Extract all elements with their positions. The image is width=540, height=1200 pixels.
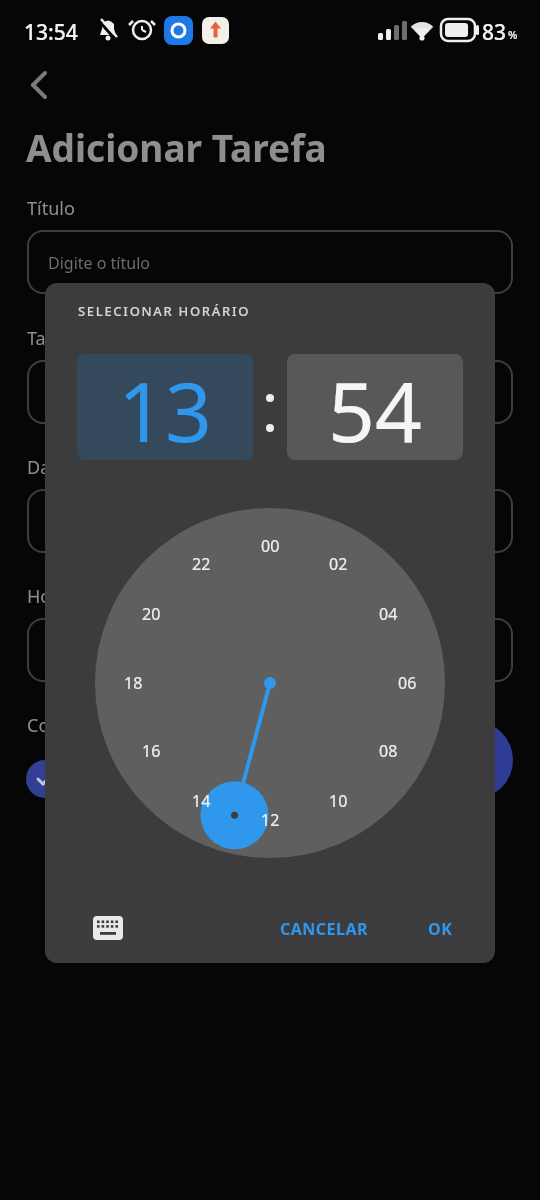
button[interactable]: 00	[248, 534, 292, 558]
staticText: 00	[261, 535, 280, 557]
staticText: 54	[328, 354, 422, 460]
staticText: 83	[482, 18, 507, 44]
staticText: Cor	[27, 713, 57, 735]
button[interactable]: 20	[129, 602, 173, 626]
staticText: 13	[118, 354, 212, 460]
button[interactable]	[27, 230, 513, 294]
button[interactable]: 54	[287, 354, 463, 460]
staticText: 14	[192, 790, 211, 812]
staticText: 06	[398, 672, 417, 694]
button[interactable]	[27, 360, 513, 424]
button[interactable]: 16	[129, 739, 173, 763]
button[interactable]: 13	[77, 354, 253, 460]
staticText: Digite o título	[48, 252, 150, 274]
staticText: SELECIONAR HORÁRIO	[78, 302, 251, 320]
staticText: Título	[27, 196, 75, 218]
staticText: 08	[379, 740, 398, 762]
staticText: 20	[142, 603, 161, 625]
button[interactable]: 18	[111, 671, 155, 695]
staticText: CANCELAR	[280, 918, 369, 940]
staticText: Hora	[27, 584, 69, 606]
staticText: 04	[379, 603, 398, 625]
staticText: 10	[329, 790, 348, 812]
button[interactable]: OK	[415, 913, 465, 945]
button[interactable]: 02	[316, 552, 360, 576]
staticText: OK	[428, 918, 453, 940]
staticText: 16	[142, 740, 161, 762]
button[interactable]	[27, 618, 513, 682]
button[interactable]: CANCELAR	[257, 913, 392, 945]
staticText: 02	[329, 553, 348, 575]
button[interactable]: 08	[366, 739, 410, 763]
button[interactable]	[27, 489, 513, 553]
staticText: 22	[192, 553, 211, 575]
staticText: %	[508, 27, 518, 42]
staticText: 12	[261, 809, 280, 831]
button[interactable]: 12	[248, 808, 292, 832]
staticText: Tarefa	[27, 326, 80, 348]
button[interactable]: 04	[366, 602, 410, 626]
button[interactable]	[20, 68, 56, 104]
button[interactable]: 10	[316, 789, 360, 813]
staticText: 18	[124, 672, 143, 694]
button[interactable]: 22	[179, 552, 223, 576]
staticText: 13:54	[24, 18, 78, 44]
button[interactable]	[26, 760, 64, 798]
staticText: Data	[27, 455, 67, 477]
staticText: Adicionar Tarefa	[26, 122, 327, 168]
button[interactable]: 06	[385, 671, 429, 695]
button[interactable]	[86, 910, 130, 946]
button[interactable]: 14	[179, 789, 223, 813]
